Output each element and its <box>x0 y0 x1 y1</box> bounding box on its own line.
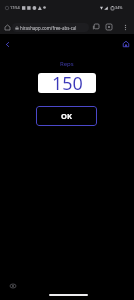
staticText: hirashapp.com/free-abs-cal <box>20 25 77 31</box>
button[interactable]: 150 <box>38 73 96 93</box>
staticText: Reps <box>60 60 74 67</box>
button[interactable]: Back <box>0 37 14 51</box>
button[interactable]: Add to home screen <box>103 21 115 33</box>
staticText: 17:54 <box>10 5 20 10</box>
staticText: 150 <box>52 73 83 91</box>
staticText: OK <box>61 111 72 121</box>
button[interactable]: OK <box>36 106 97 126</box>
button[interactable]: Home <box>119 37 133 51</box>
staticText: 34% <box>115 5 123 10</box>
button[interactable]: Reader mode <box>6 279 20 293</box>
button[interactable]: Tabs <box>90 21 102 33</box>
button[interactable]: Home <box>1 21 13 33</box>
button[interactable]: hirashapp.com/free-abs-cal <box>12 23 89 32</box>
button[interactable]: More options <box>119 21 131 33</box>
